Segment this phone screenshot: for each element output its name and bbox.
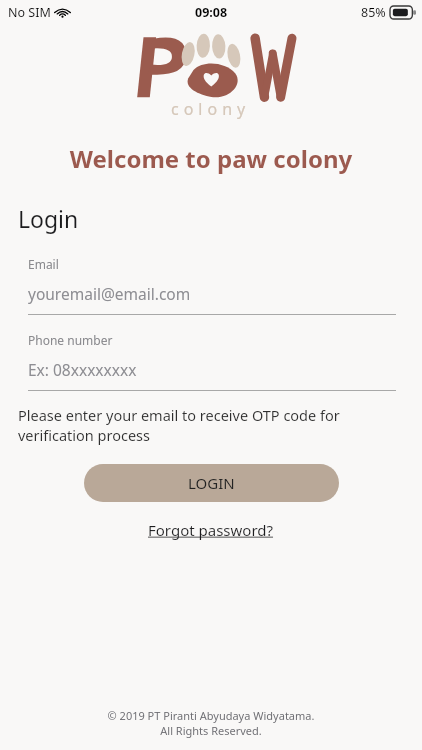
staticText: Email bbox=[28, 256, 59, 272]
button[interactable]: LOGIN bbox=[84, 464, 339, 502]
staticText: youremail@email.com bbox=[28, 283, 191, 304]
staticText: Ex: 08xxxxxxxx bbox=[28, 359, 137, 380]
staticText: 85% bbox=[361, 4, 386, 21]
staticText: No SIM bbox=[8, 4, 51, 21]
staticText: © 2019 PT Piranti Abyudaya Widyatama. Al… bbox=[0, 708, 422, 738]
button[interactable]: Ex: 08xxxxxxxx bbox=[28, 359, 396, 391]
staticText: 09:08 bbox=[195, 4, 228, 21]
staticText: Login bbox=[18, 203, 79, 234]
staticText: LOGIN bbox=[188, 473, 235, 493]
staticText: Please enter your email to receive OTP c… bbox=[18, 405, 404, 446]
button[interactable]: Forgot password? bbox=[142, 518, 280, 542]
staticText: Phone number bbox=[28, 332, 113, 348]
button[interactable]: youremail@email.com bbox=[28, 283, 396, 315]
staticText: colony bbox=[171, 98, 251, 120]
staticText: Forgot password? bbox=[148, 520, 274, 540]
staticText: Welcome to paw colony bbox=[0, 142, 422, 175]
